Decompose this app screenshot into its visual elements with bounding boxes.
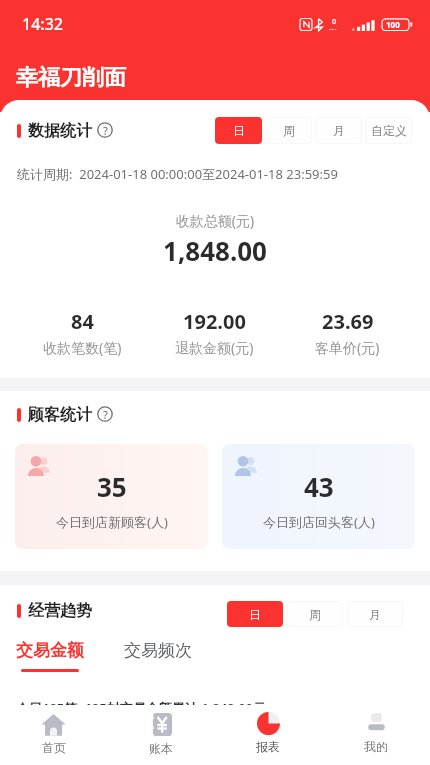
staticText: K/s — [329, 27, 340, 30]
staticText: 经营趋势 — [28, 601, 92, 621]
staticText: 周 — [309, 607, 321, 622]
staticText: 退款金额(元) — [175, 338, 254, 357]
button[interactable]: 月 — [348, 602, 402, 626]
button[interactable]: 报表 — [214, 705, 322, 765]
staticText: 顾客统计 — [28, 405, 92, 425]
staticText: 100 — [386, 19, 400, 30]
button[interactable]: 帮助说明 — [97, 122, 113, 138]
staticText: 收款笔数(笔) — [43, 338, 122, 357]
button[interactable]: 交易频次 — [124, 640, 192, 672]
button[interactable]: 35 — [15, 444, 208, 549]
staticText: 幸福刀削面 — [16, 64, 126, 92]
staticText: 14:32 — [22, 13, 63, 35]
button[interactable]: 日 — [228, 602, 282, 626]
button[interactable]: 日 — [216, 118, 261, 143]
button[interactable]: 自定义 — [366, 118, 411, 143]
staticText: 周 — [283, 123, 295, 138]
staticText: 我的 — [364, 739, 388, 754]
staticText: 账本 — [149, 741, 173, 756]
staticText: 客单价(元) — [315, 338, 380, 357]
button[interactable]: 月 — [316, 118, 361, 143]
staticText: 今日到店新顾客(人) — [56, 513, 168, 531]
staticText: ? — [103, 123, 108, 138]
staticText: ? — [103, 407, 108, 422]
staticText: 交易金额 — [16, 640, 84, 661]
staticText: 日 — [249, 607, 261, 622]
staticText: 数据统计 — [28, 121, 92, 141]
staticText: 报表 — [256, 739, 280, 754]
button[interactable]: 43 — [222, 444, 415, 549]
staticText: 84 — [71, 308, 94, 335]
staticText: 23.69 — [322, 308, 374, 335]
button[interactable]: 账本 — [107, 705, 214, 765]
staticText: 192.00 — [183, 308, 246, 335]
staticText: 交易频次 — [124, 640, 192, 661]
button[interactable]: 交易金额 — [16, 640, 84, 672]
staticText: 今日到店回头客(人) — [263, 513, 375, 531]
staticText: 0 — [332, 17, 337, 27]
staticText: 月 — [333, 123, 345, 138]
staticText: 统计周期: 2024-01-18 00:00:00至2024-01-18 23:… — [17, 165, 338, 183]
staticText: 43 — [304, 469, 334, 504]
button[interactable]: 帮助说明 — [97, 406, 113, 422]
staticText: 首页 — [42, 740, 66, 755]
staticText: 35 — [97, 469, 127, 504]
staticText: 收款总额(元) — [0, 211, 430, 230]
staticText: 自定义 — [371, 123, 407, 138]
staticText: 1,848.00 — [0, 233, 430, 268]
staticText: 月 — [369, 607, 381, 622]
staticText: 今日185笔, 185封交易金额累计 1,848.00元 — [16, 699, 267, 717]
staticText: 日 — [233, 123, 245, 138]
button[interactable]: 周 — [288, 602, 342, 626]
button[interactable]: 首页 — [0, 705, 107, 765]
button[interactable]: 周 — [266, 118, 311, 143]
button[interactable]: 我的 — [322, 705, 430, 765]
